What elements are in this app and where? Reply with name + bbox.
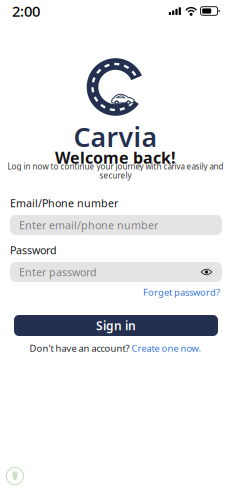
staticText: securely: [99, 170, 131, 181]
staticText: Email/Phone number: [10, 196, 118, 210]
button[interactable]: Create one now.: [129, 342, 201, 354]
staticText: Sign in: [96, 317, 136, 333]
staticText: 2:00: [12, 1, 40, 21]
staticText: Password: [10, 243, 57, 257]
staticText: Log in now to continue your journey with…: [7, 161, 223, 172]
staticText: Create one now.: [129, 342, 201, 354]
staticText: Carvia: [73, 119, 157, 154]
staticText: Forget password?: [143, 286, 220, 298]
staticText: Welcome back!: [55, 147, 176, 168]
staticText: Enter email/phone number: [19, 218, 158, 232]
button[interactable]: Sign in: [14, 315, 218, 336]
staticText: Enter password: [19, 265, 97, 279]
button[interactable]: Forget password?: [143, 286, 220, 298]
staticText: Don't have an account?: [29, 342, 129, 354]
